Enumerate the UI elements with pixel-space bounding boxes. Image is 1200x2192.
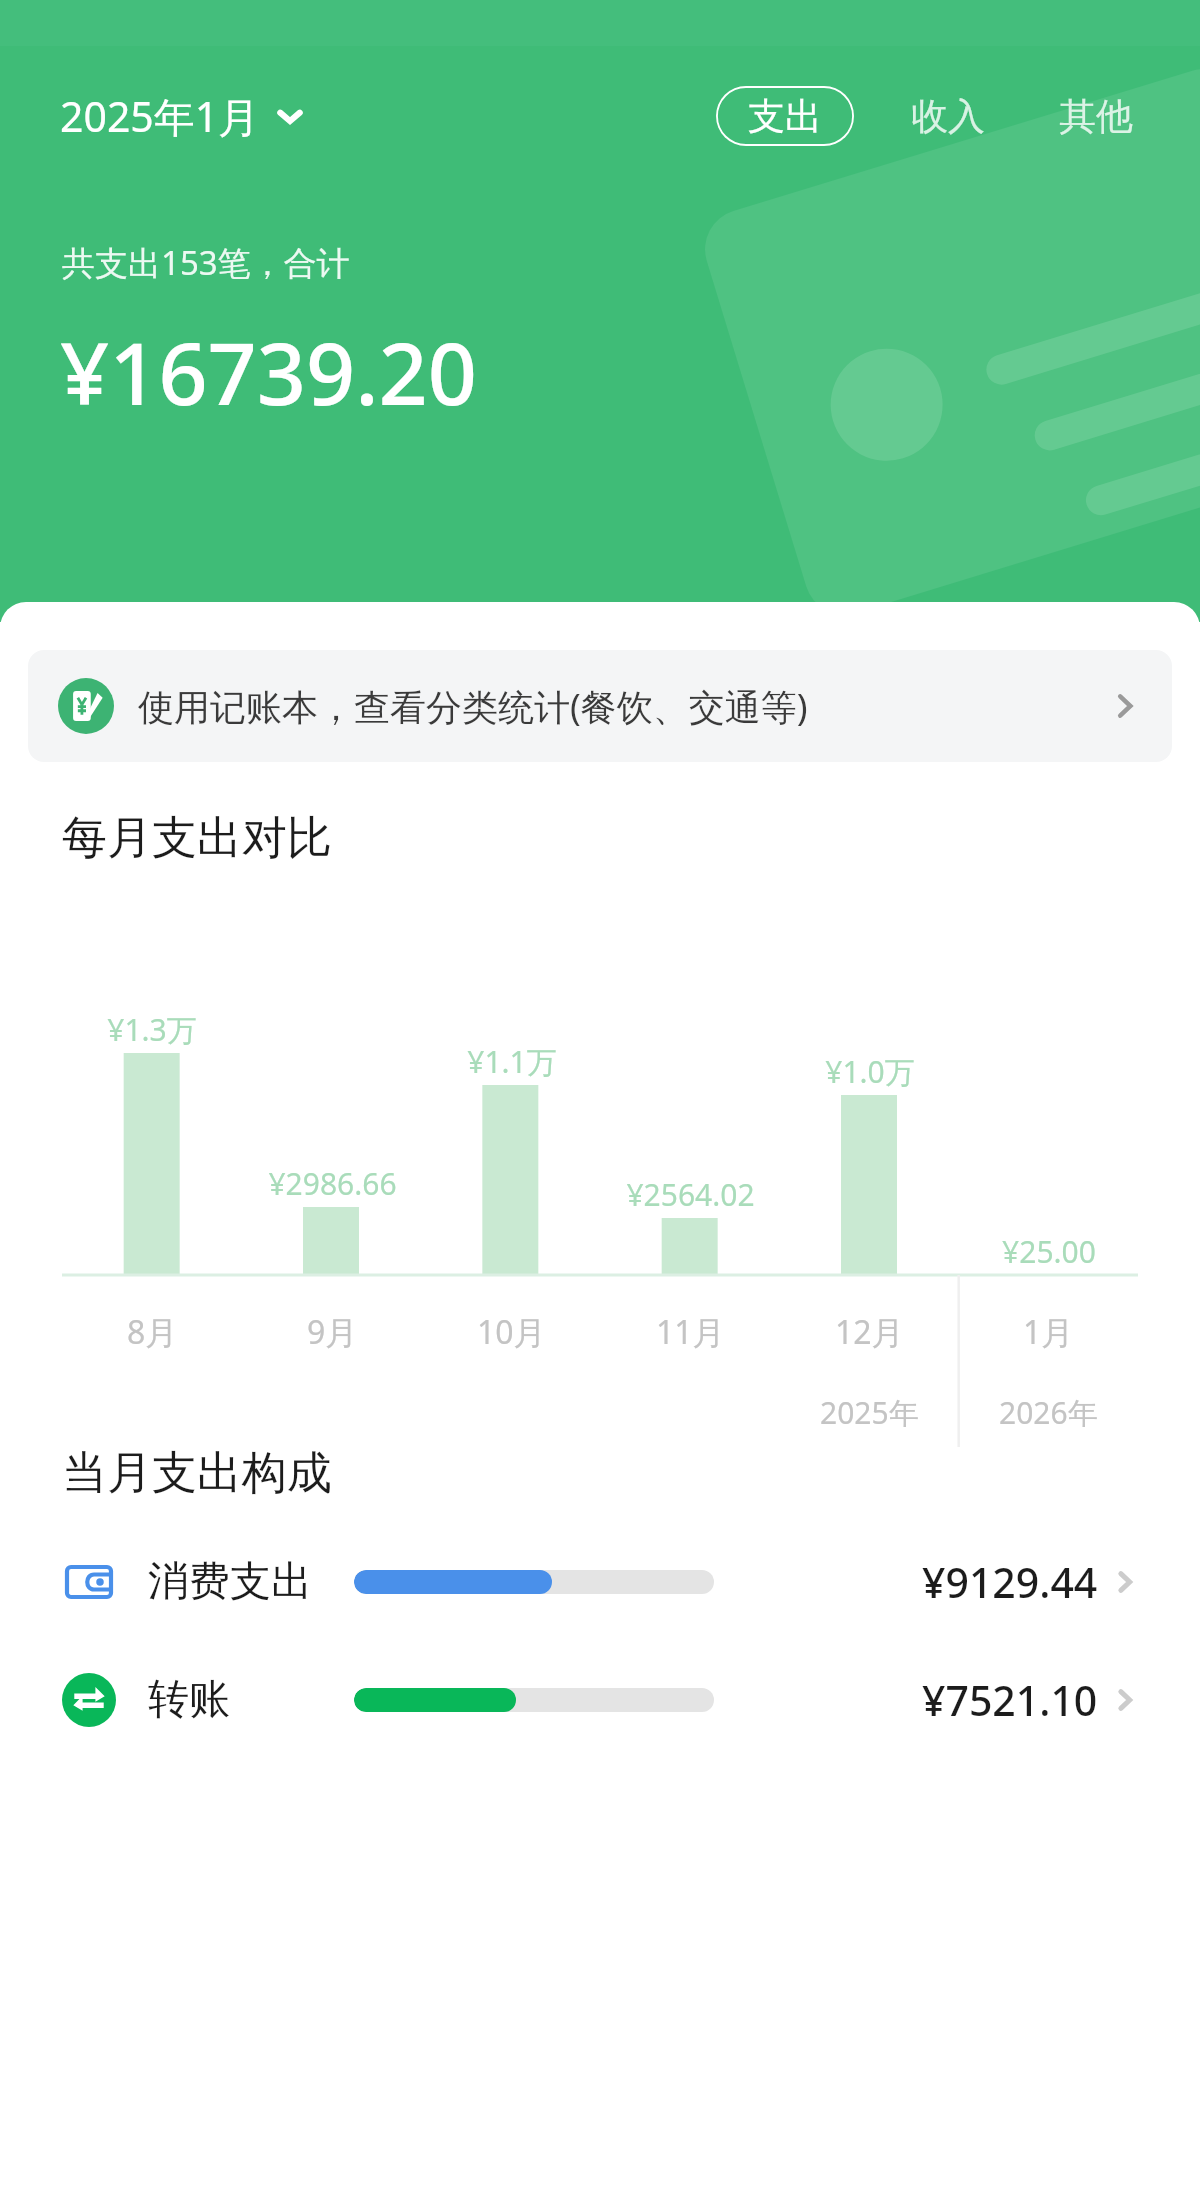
button[interactable]: 使用记账本，查看分类统计(餐饮、交通等) (28, 650, 1172, 762)
staticText: 2025年1月 (60, 88, 260, 144)
staticText: ¥1.1万 (467, 1041, 557, 1082)
button[interactable]: 收入 (894, 86, 1002, 146)
staticText: 9月 (307, 1310, 358, 1354)
staticText: 其他 (1059, 93, 1133, 140)
staticText: ¥25.00 (1002, 1231, 1096, 1272)
other: Open details (1112, 1687, 1138, 1713)
staticText: 共支出153笔，合计 (62, 240, 350, 285)
staticText: 使用记账本，查看分类统计(餐饮、交通等) (138, 682, 808, 731)
staticText: ¥16739.20 (60, 313, 477, 430)
staticText: 消费支出 (148, 1556, 338, 1608)
staticText: 1月 (1023, 1310, 1074, 1354)
staticText: 12月 (835, 1310, 904, 1354)
button[interactable]: 消费支出 (0, 1546, 1200, 1618)
staticText: 当月支出构成 (62, 1445, 332, 1502)
staticText: ¥2986.66 (268, 1163, 397, 1204)
button[interactable]: 其他 (1042, 86, 1150, 146)
staticText: ¥1.0万 (825, 1051, 915, 1092)
button[interactable]: 2025年1月 (54, 80, 310, 152)
staticText: 8月 (127, 1310, 178, 1354)
staticText: 收入 (911, 93, 985, 140)
staticText: 2025年 (820, 1392, 919, 1427)
button[interactable]: 支出 (716, 86, 854, 146)
button[interactable]: 转账 (0, 1664, 1200, 1736)
staticText: ¥2564.02 (626, 1174, 755, 1215)
staticText: ¥7521.10 (922, 1672, 1098, 1728)
staticText: 2026年 (999, 1392, 1098, 1427)
staticText: 11月 (656, 1310, 725, 1354)
staticText: 10月 (477, 1310, 546, 1354)
staticText: 转账 (148, 1674, 338, 1726)
other: Open details (1112, 1569, 1138, 1595)
staticText: ¥1.3万 (107, 1009, 197, 1050)
staticText: 支出 (748, 93, 822, 140)
staticText: 每月支出对比 (62, 810, 332, 867)
staticText: ¥9129.44 (922, 1554, 1098, 1610)
